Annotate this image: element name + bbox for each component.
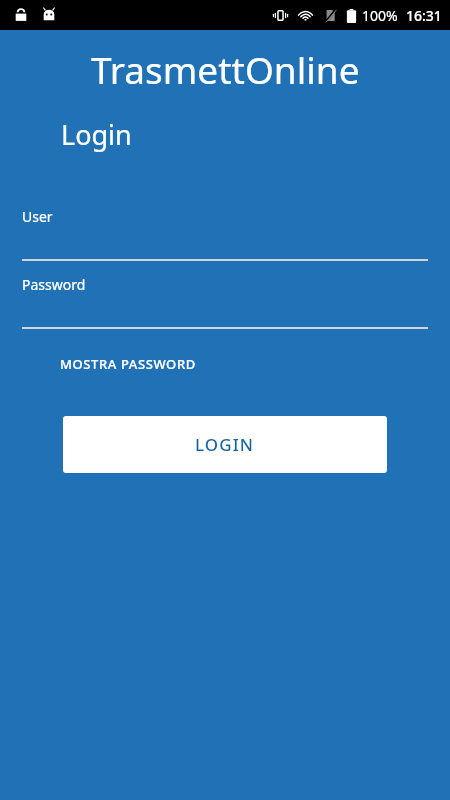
button[interactable]: Password (0, 274, 450, 294)
staticText: MOSTRA PASSWORD (60, 355, 196, 373)
other: Secure (14, 8, 28, 22)
button[interactable]: LOGIN (63, 416, 387, 473)
other: Android (42, 8, 56, 22)
staticText: TrasmettOnline (91, 44, 360, 94)
staticText: 16:31 (406, 6, 442, 25)
staticText: Password (22, 275, 86, 294)
staticText: LOGIN (195, 433, 255, 456)
staticText: User (22, 207, 53, 226)
staticText: 100% (362, 6, 398, 25)
button[interactable]: MOSTRA PASSWORD (44, 346, 212, 382)
staticText: Login (61, 116, 132, 153)
button[interactable]: User (0, 206, 450, 226)
